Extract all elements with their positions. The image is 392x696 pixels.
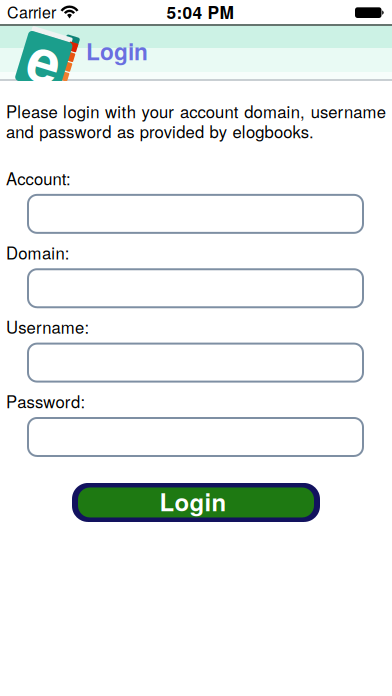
- button[interactable]: Login: [72, 483, 320, 522]
- button[interactable]: Account text field: [0, 195, 392, 233]
- staticText: Login: [86, 35, 148, 67]
- button[interactable]: Username text field: [0, 344, 392, 382]
- staticText: Carrier: [7, 0, 56, 23]
- staticText: Please login with your account domain, u…: [6, 99, 386, 123]
- staticText: Password:: [6, 389, 85, 413]
- staticText: e: [30, 16, 63, 100]
- staticText: Login: [159, 484, 226, 519]
- staticText: and password as provided by elogbooks.: [6, 119, 314, 143]
- button[interactable]: Domain text field: [0, 269, 392, 307]
- staticText: 5:04 PM: [166, 0, 233, 24]
- staticText: Username:: [6, 315, 89, 339]
- button[interactable]: Password text field: [0, 418, 392, 456]
- staticText: Account:: [6, 166, 71, 190]
- staticText: Domain:: [6, 240, 70, 264]
